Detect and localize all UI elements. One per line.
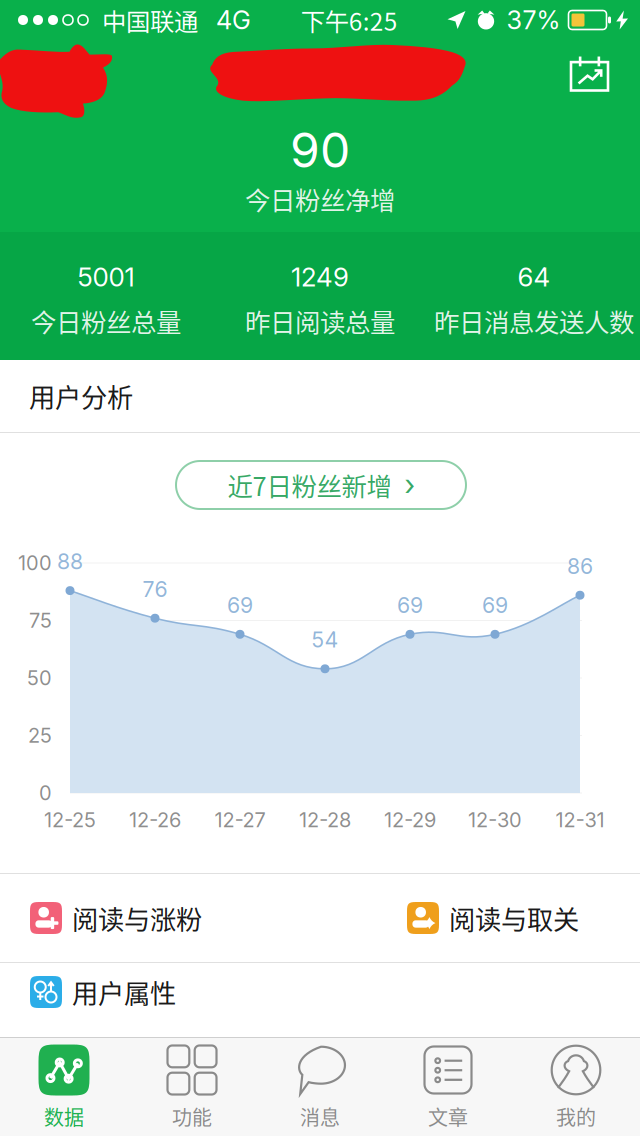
staticText: 69 [227,592,253,618]
button[interactable]: 用户分析 [0,360,640,432]
button[interactable]: ‹ [0,40,89,108]
button[interactable]: 阅读与取关 [407,874,640,962]
staticText: 数据 [44,1102,84,1131]
staticText: 文章 [428,1102,468,1131]
staticText: 50 [27,666,52,690]
staticText: 86 [567,553,593,579]
staticText: 消息 [300,1102,340,1131]
staticText: 昨日阅读总量 [245,303,395,339]
button[interactable]: Date range [570,40,640,108]
staticText: 88 [57,549,83,574]
staticText: 1249 [291,261,349,293]
staticText: 64 [517,261,550,293]
button[interactable]: 1249 [0,232,380,292]
button[interactable]: 5001 [0,232,166,292]
staticText: 用户分析 [29,377,133,415]
button[interactable]: 64 [0,232,594,292]
staticText: 90 [290,121,350,179]
staticText: 我的 [556,1102,596,1131]
staticText: 阅读与涨粉 [72,899,202,937]
staticText: 今日粉丝净增 [245,181,395,217]
staticText: 69 [397,592,423,618]
staticText: 12-26 [129,808,181,832]
staticText: 25 [28,723,52,748]
staticText: 12-27 [214,808,265,832]
staticText: 100 [18,551,52,575]
staticText: 75 [29,608,52,633]
staticText: › [404,467,414,503]
staticText: 69 [482,592,508,618]
button[interactable]: 阅读与涨粉 [0,874,407,962]
button[interactable]: 近7日粉丝新增 [176,461,466,509]
staticText: 12-29 [384,808,436,832]
staticText: 阅读与取关 [449,899,579,937]
staticText: 12-30 [468,808,522,832]
staticText: 37% [506,5,560,35]
button[interactable]: 用户属性 [0,963,640,1037]
staticText: 12-28 [299,808,351,832]
button[interactable]: 文章 [384,1038,512,1136]
button[interactable]: 功能 [128,1038,256,1136]
button[interactable]: 消息 [256,1038,384,1136]
staticText: 76 [142,576,167,602]
button[interactable]: 数据 [0,1038,128,1136]
staticText: 12-31 [555,808,604,832]
staticText: 中国联通 [102,2,198,38]
staticText: 4G [216,5,251,35]
staticText: 昨日消息发送人数 [434,303,634,339]
staticText: 下午6:25 [301,2,398,38]
button[interactable]: 我的 [512,1038,640,1136]
staticText: 用户属性 [72,973,176,1011]
staticText: 0 [39,781,52,805]
staticText: 12-25 [44,808,96,832]
staticText: 5001 [77,261,134,293]
staticText: 近7日粉丝新增 [227,467,391,503]
staticText: 54 [311,627,338,653]
staticText: 今日粉丝总量 [31,303,181,339]
staticText: 功能 [172,1102,212,1131]
